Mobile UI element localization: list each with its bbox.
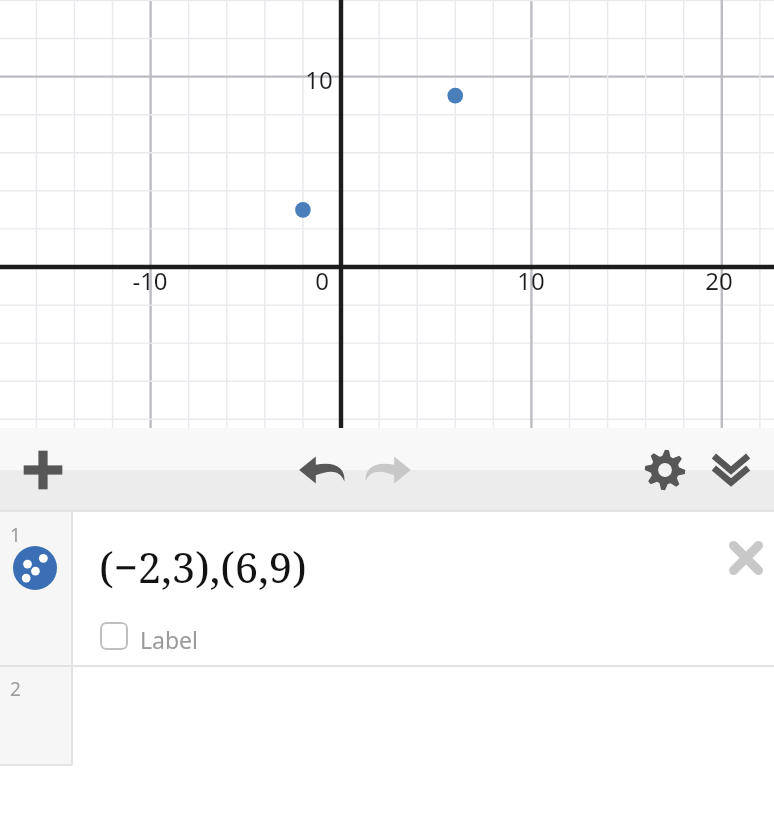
staticText: Label xyxy=(140,624,199,655)
staticText: 20 xyxy=(674,264,764,297)
staticText: 0 xyxy=(277,264,367,297)
staticText: -10 xyxy=(105,264,195,297)
button[interactable]: Delete expression xyxy=(722,534,770,582)
staticText: 10 xyxy=(274,63,364,96)
staticText: 1 xyxy=(10,522,21,548)
staticText: 10 xyxy=(486,264,576,297)
staticText: (−2,3),(6,9) xyxy=(99,538,307,595)
button[interactable]: Redo xyxy=(363,444,415,496)
button[interactable]: Point style xyxy=(13,546,57,590)
button[interactable]: Graph canvas xyxy=(0,0,774,428)
button[interactable]: Collapse keypad xyxy=(708,447,754,493)
button[interactable]: Undo xyxy=(295,444,347,496)
button[interactable]: Add expression xyxy=(20,447,66,493)
button[interactable]: (−2,3),(6,9) xyxy=(99,538,419,604)
button[interactable]: Label xyxy=(96,618,226,658)
button[interactable]: Settings xyxy=(642,447,688,493)
staticText: 2 xyxy=(10,676,21,702)
